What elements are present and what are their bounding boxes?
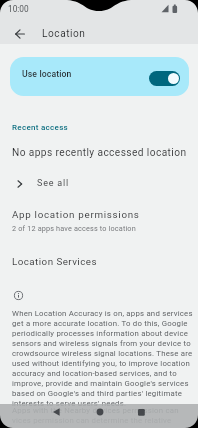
staticText: 10:00 xyxy=(8,4,29,14)
staticText: Apps with the Nearby devices permission … xyxy=(12,406,179,415)
staticText: vices permission can determine the relat… xyxy=(12,416,172,425)
staticText: Location xyxy=(42,28,86,40)
staticText: Recent access xyxy=(12,123,69,132)
staticText: No apps recently accessed location xyxy=(12,147,187,159)
staticText: 2 of 12 apps have access to location xyxy=(12,224,136,233)
staticText: When Location Accuracy is on, apps and s… xyxy=(12,309,193,408)
staticText: Use location xyxy=(22,69,72,79)
staticText: App location permissions xyxy=(12,209,140,220)
staticText: Location Services xyxy=(12,256,97,267)
button[interactable]: Use location xyxy=(10,57,189,96)
staticText: See all xyxy=(37,178,69,189)
button[interactable]: See all xyxy=(0,172,198,194)
button[interactable] xyxy=(43,399,69,425)
button[interactable] xyxy=(87,399,113,425)
button[interactable] xyxy=(9,24,31,44)
button[interactable] xyxy=(128,399,154,425)
